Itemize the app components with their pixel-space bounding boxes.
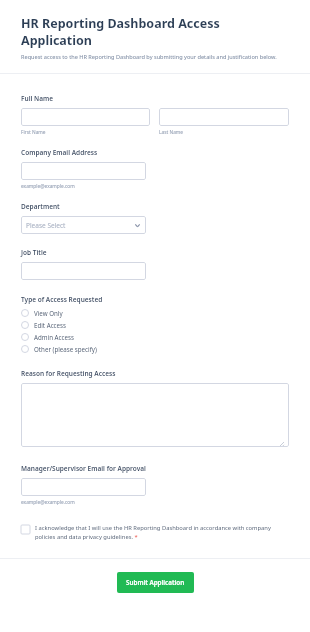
staticText: First Name (21, 129, 46, 136)
button[interactable]: I acknowledge that I will use the HR Rep… (21, 524, 289, 541)
button[interactable] (21, 108, 150, 126)
staticText: Department (21, 202, 60, 211)
staticText: Type of Access Requested (21, 295, 103, 304)
button[interactable] (21, 478, 146, 496)
staticText: Admin Access (34, 333, 74, 341)
staticText: Last Name (159, 129, 184, 136)
staticText: example@example.com (21, 499, 75, 506)
button[interactable] (21, 383, 289, 447)
button[interactable] (21, 262, 146, 280)
button[interactable]: Please Select (21, 216, 146, 234)
button[interactable]: Edit Access (21, 319, 289, 331)
staticText: Edit Access (34, 321, 66, 329)
staticText: Submit Application (126, 578, 185, 587)
button[interactable]: Admin Access (21, 331, 289, 343)
staticText: Other (please specify) (34, 345, 97, 353)
staticText: Company Email Address (21, 148, 98, 157)
staticText: Reason for Requesting Access (21, 369, 116, 378)
staticText: Full Name (21, 94, 54, 103)
staticText: example@example.com (21, 183, 75, 190)
staticText: I acknowledge that I will use the HR Rep… (35, 524, 289, 541)
button[interactable]: View Only (21, 307, 289, 319)
staticText: HR Reporting Dashboard Access Applicatio… (21, 15, 289, 48)
staticText: View Only (34, 309, 63, 317)
button[interactable]: Submit Application (117, 572, 194, 593)
button[interactable] (21, 162, 146, 180)
staticText: Request access to the HR Reporting Dashb… (21, 53, 277, 61)
button[interactable]: Other (please specify) (21, 343, 289, 355)
button[interactable] (159, 108, 289, 126)
staticText: Manager/Supervisor Email for Approval (21, 464, 146, 473)
staticText: Job Title (21, 248, 47, 257)
staticText: Please Select (26, 221, 66, 230)
